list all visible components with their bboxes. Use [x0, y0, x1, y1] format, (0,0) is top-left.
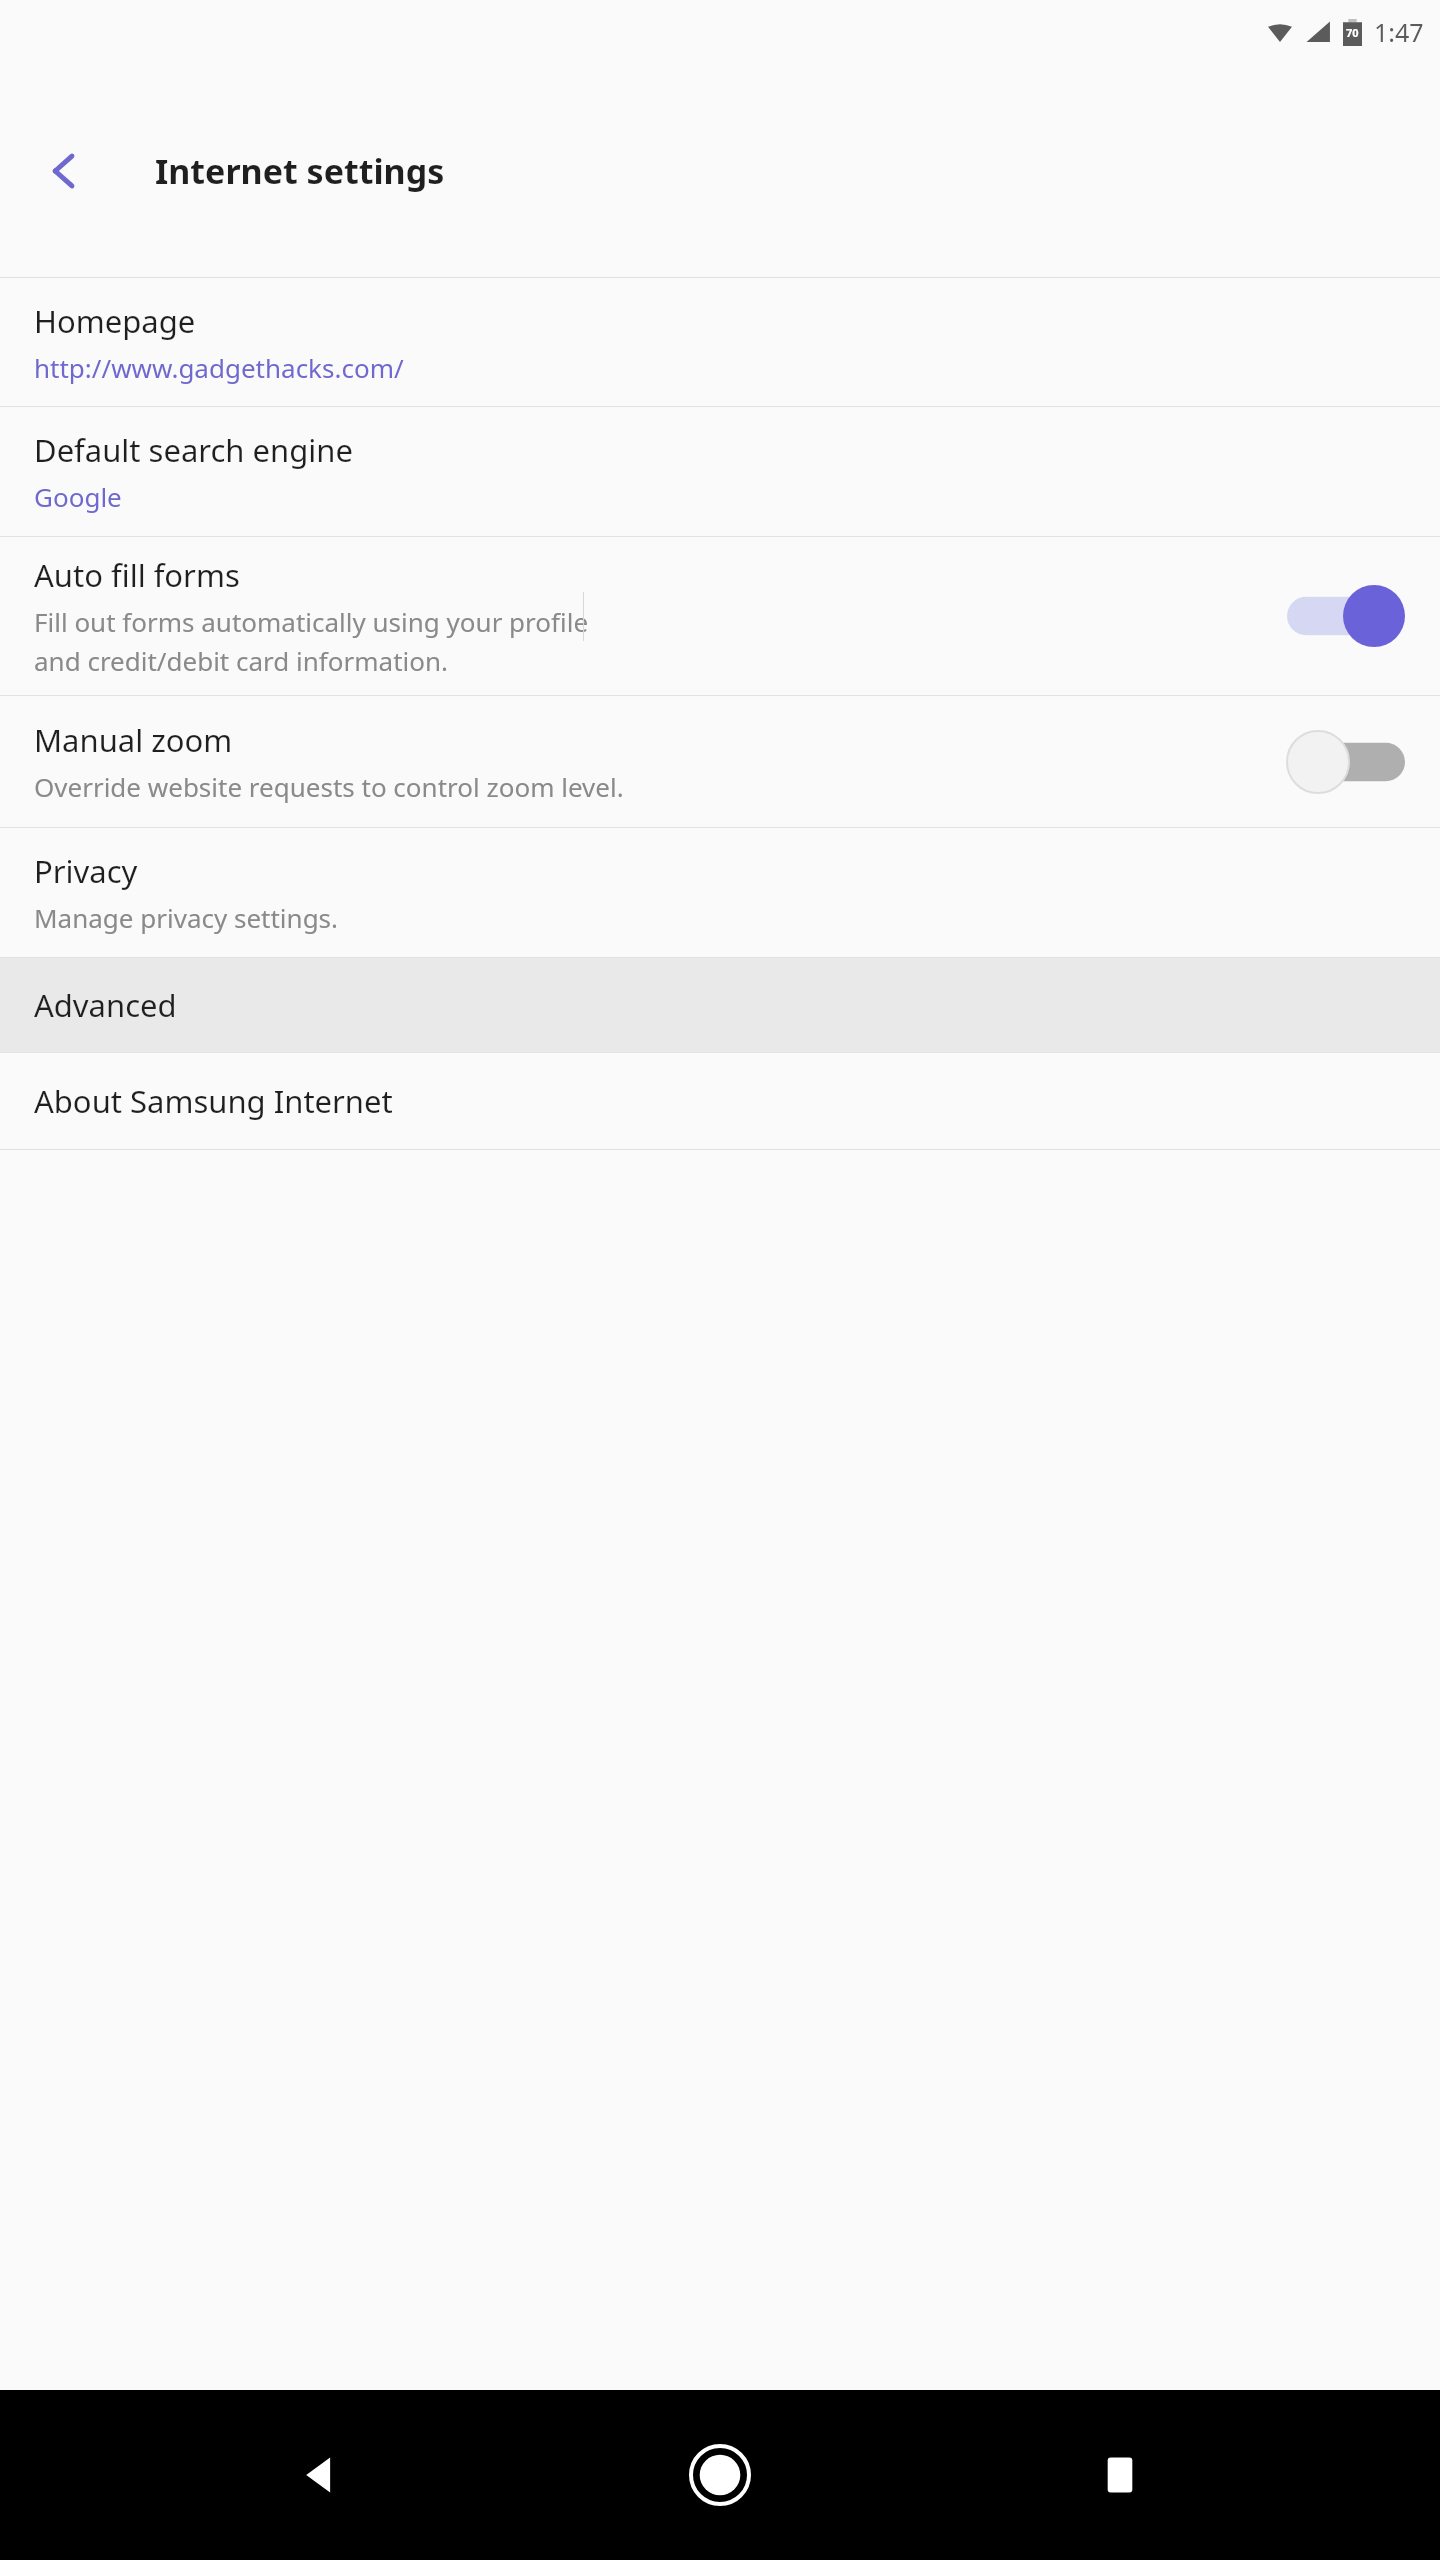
button[interactable]: Privacy — [0, 828, 1440, 957]
button[interactable]: Homepage — [0, 278, 1440, 406]
staticText: Default search engine — [34, 429, 353, 471]
button[interactable]: Advanced — [0, 958, 1440, 1052]
button[interactable]: Back — [250, 2405, 390, 2545]
button[interactable]: Auto fill forms — [0, 537, 1440, 695]
staticText: and credit/debit card information. — [34, 643, 448, 678]
button[interactable]: About Samsung Internet — [0, 1053, 1440, 1149]
staticText: Internet settings — [155, 148, 445, 194]
staticText: 1:47 — [1374, 15, 1424, 49]
button[interactable]: Manual zoom — [0, 696, 1440, 827]
button[interactable]: Recent apps — [1050, 2405, 1190, 2545]
staticText: Google — [34, 479, 122, 514]
staticText: Manual zoom — [34, 719, 233, 761]
staticText: Fill out forms automatically using your … — [34, 604, 589, 639]
staticText: Privacy — [34, 850, 138, 892]
staticText: Manage privacy settings. — [34, 900, 339, 935]
button[interactable]: On — [1286, 580, 1406, 652]
button[interactable]: Off — [1286, 726, 1406, 798]
button[interactable]: Default search engine — [0, 407, 1440, 536]
staticText: About Samsung Internet — [34, 1080, 393, 1122]
button[interactable]: Home — [650, 2405, 790, 2545]
staticText: Override website requests to control zoo… — [34, 769, 624, 804]
staticText: Advanced — [34, 984, 177, 1026]
staticText: http://www.gadgethacks.com/ — [34, 350, 404, 385]
button[interactable]: Back — [22, 129, 106, 213]
staticText: 70 — [1346, 25, 1359, 40]
staticText: Homepage — [34, 300, 196, 342]
staticText: Auto fill forms — [34, 554, 240, 596]
